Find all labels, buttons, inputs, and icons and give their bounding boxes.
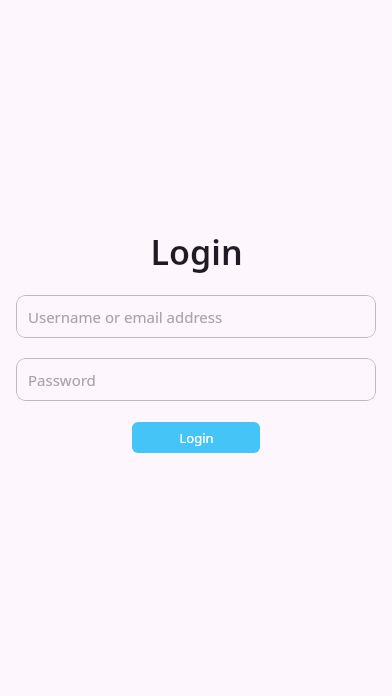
staticText: Username or email address — [28, 307, 223, 327]
staticText: Login — [150, 229, 243, 275]
staticText: Login — [179, 429, 214, 447]
staticText: Password — [28, 370, 96, 390]
button[interactable]: Username or email address — [16, 295, 376, 338]
button[interactable]: Login — [132, 422, 260, 453]
button[interactable]: Password — [16, 358, 376, 401]
